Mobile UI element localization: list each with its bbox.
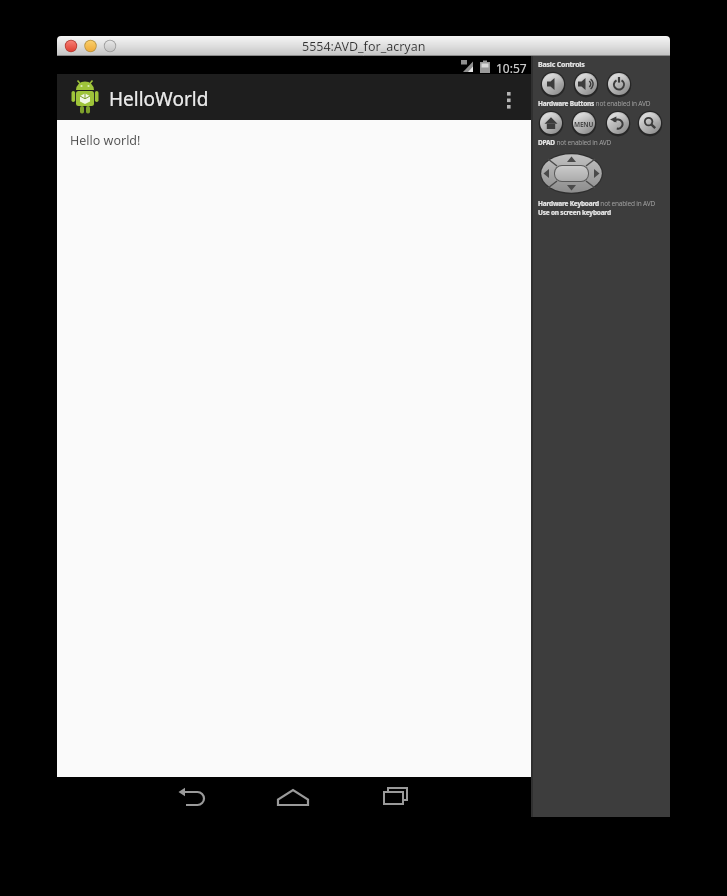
button[interactable]: [540, 153, 603, 194]
staticText: Use on screen keyboard: [538, 208, 611, 217]
button[interactable]: [571, 110, 597, 136]
button[interactable]: [493, 74, 531, 120]
staticText: HelloWorld: [109, 86, 209, 112]
staticText: MENU: [574, 120, 594, 129]
button[interactable]: [376, 777, 416, 817]
staticText: Hardware Buttons not enabled in AVD: [538, 99, 651, 108]
button[interactable]: [173, 777, 213, 817]
button[interactable]: [540, 71, 566, 97]
staticText: Hardware Keyboard not enabled in AVD: [538, 199, 656, 208]
button[interactable]: [573, 71, 599, 97]
staticText: Hello world!: [70, 132, 141, 149]
button[interactable]: [538, 110, 564, 136]
staticText: Basic Controls: [538, 60, 585, 70]
staticText: 5554:AVD_for_acryan: [302, 38, 426, 55]
button[interactable]: [605, 110, 631, 136]
button[interactable]: [637, 110, 663, 136]
staticText: 10:57: [496, 60, 527, 76]
button[interactable]: [273, 777, 313, 817]
button[interactable]: [606, 71, 632, 97]
staticText: DPAD not enabled in AVD: [538, 138, 612, 147]
